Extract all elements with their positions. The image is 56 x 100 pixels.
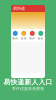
staticText: 寄件 bbox=[12, 37, 18, 40]
staticText: 易快递新人入口 bbox=[3, 78, 52, 86]
staticText: 寄件 bbox=[29, 37, 35, 40]
staticText: 寄件 bbox=[21, 37, 27, 40]
staticText: 易快递 bbox=[13, 6, 25, 11]
staticText: 寄件 bbox=[38, 37, 44, 40]
staticText: 寄件优惠券免费领 bbox=[12, 86, 44, 91]
